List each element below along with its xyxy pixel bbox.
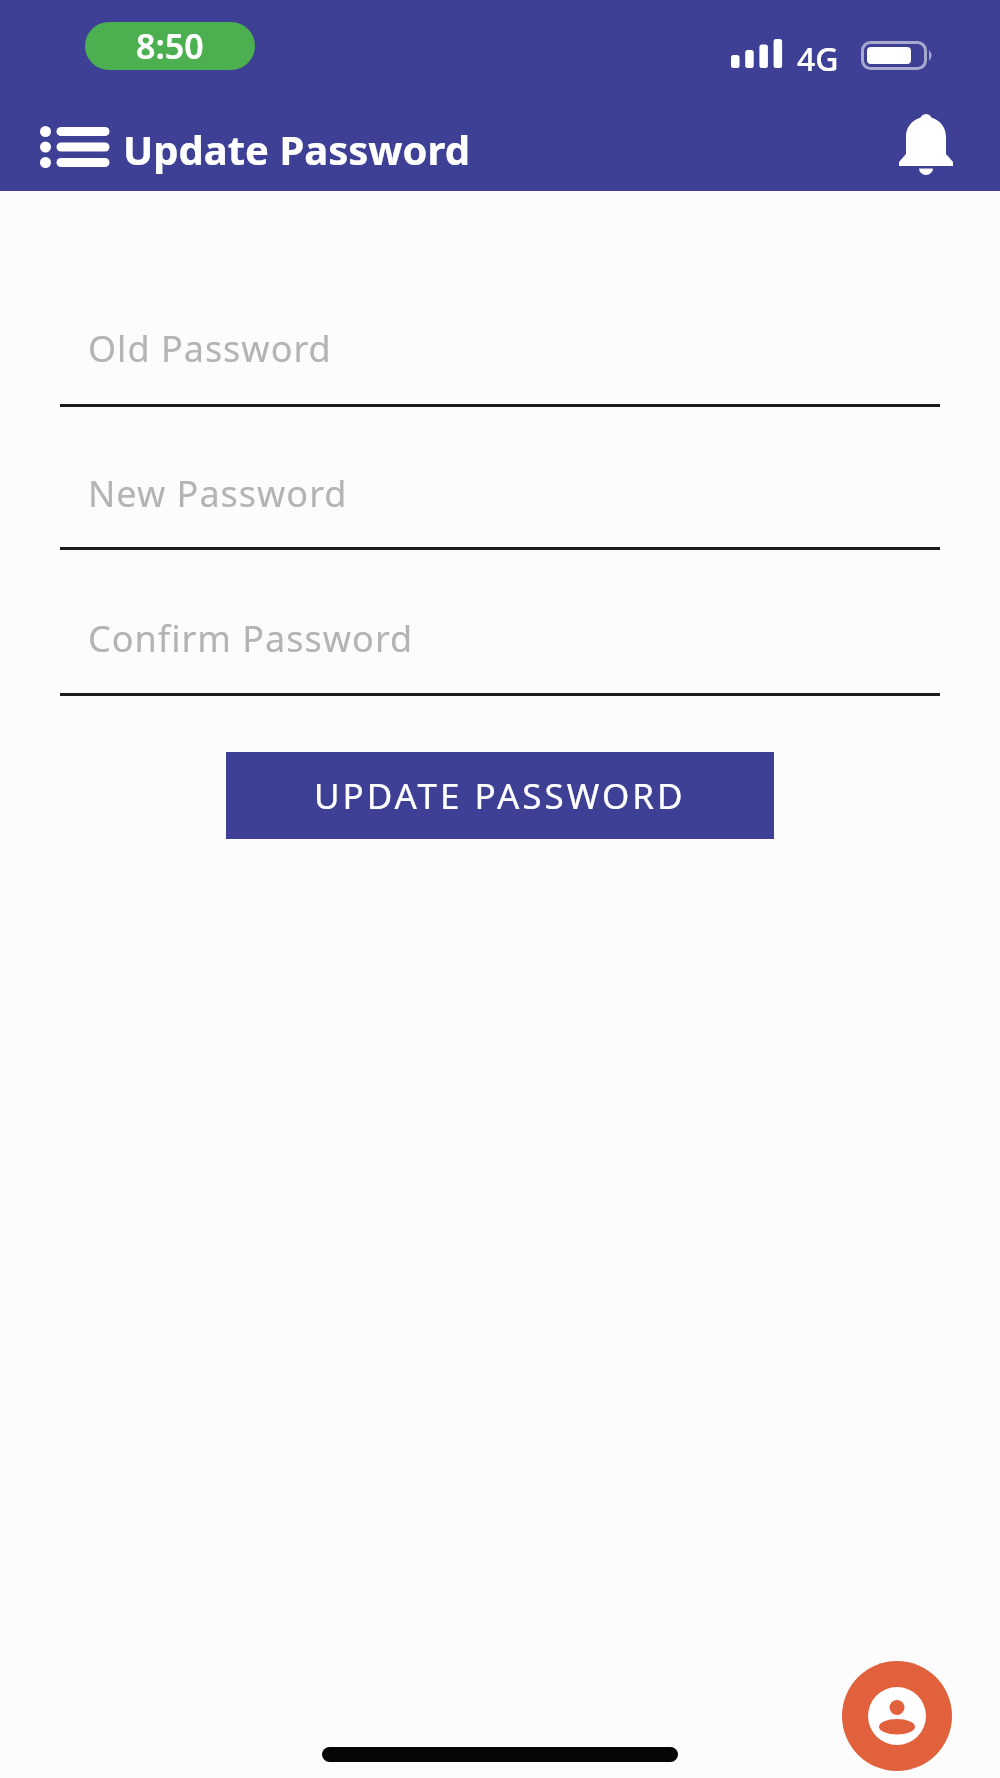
staticText: Confirm Password xyxy=(88,614,414,663)
staticText: Old Password xyxy=(88,324,332,373)
staticText: New Password xyxy=(88,469,348,518)
button[interactable] xyxy=(842,1661,952,1771)
staticText: 8:50 xyxy=(136,23,204,69)
staticText: UPDATE PASSWORD xyxy=(314,772,686,820)
staticText: 4G xyxy=(797,37,839,81)
button[interactable]: UPDATE PASSWORD xyxy=(226,752,774,839)
staticText: Update Password xyxy=(123,122,470,176)
button[interactable]: Confirm Password xyxy=(60,614,940,734)
button[interactable]: Old Password xyxy=(60,324,940,444)
button[interactable]: New Password xyxy=(60,469,940,589)
button[interactable]: 8:50 xyxy=(85,22,255,70)
button[interactable] xyxy=(895,113,957,177)
button[interactable] xyxy=(28,115,120,179)
